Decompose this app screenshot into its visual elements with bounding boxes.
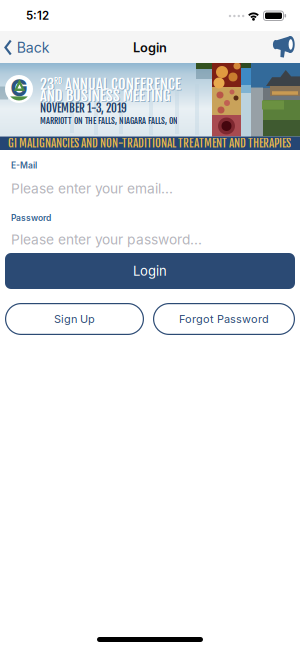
button[interactable]: Login	[5, 253, 295, 289]
staticText: NOVEMBER 1-3, 2019	[40, 101, 127, 115]
staticText: 23	[41, 76, 55, 94]
staticText: 23	[40, 75, 54, 93]
staticText: ANNUAL CONFERENCE	[62, 75, 181, 93]
staticText: ANNUAL CONFERENCE	[63, 76, 182, 94]
staticText: Please enter your email...	[11, 180, 173, 197]
staticText: AND BUSINESS MEETING	[41, 87, 171, 106]
staticText: G	[10, 74, 27, 102]
staticText: Please enter your password...	[11, 231, 202, 248]
staticText: Password	[11, 213, 51, 223]
button[interactable]: Announcements	[270, 35, 296, 59]
staticText: RD	[54, 76, 62, 86]
staticText: Back	[17, 39, 50, 56]
staticText: E-Mail	[11, 160, 37, 171]
staticText: 5:12	[26, 9, 49, 22]
staticText: GI MALIGNANCIES AND NON-TRADITIONAL TREA…	[8, 136, 291, 150]
staticText: RD	[55, 77, 63, 86]
staticText: AND BUSINESS MEETING	[40, 86, 170, 105]
staticText: Sign Up	[54, 312, 95, 326]
button[interactable]: Sign Up	[5, 303, 144, 335]
staticText: Forgot Password	[179, 312, 269, 326]
staticText: MARRIOTT ON THE FALLS, NIAGARA FALLS, ON	[40, 115, 178, 126]
button[interactable]: Back	[0, 34, 54, 61]
staticText: Login	[133, 40, 167, 55]
staticText: Login	[133, 263, 167, 279]
button[interactable]: Forgot Password	[153, 303, 295, 335]
